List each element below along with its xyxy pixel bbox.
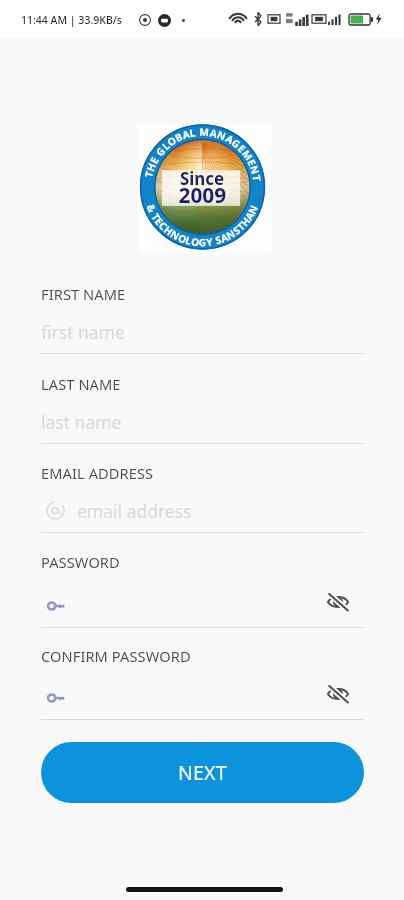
staticText: last name bbox=[41, 410, 122, 434]
button[interactable] bbox=[41, 590, 364, 622]
button[interactable]: Toggle password visibility bbox=[321, 677, 355, 711]
button[interactable] bbox=[41, 682, 364, 714]
staticText: CONFIRM PASSWORD bbox=[41, 646, 191, 666]
button[interactable]: last name bbox=[41, 406, 364, 438]
staticText: EMAIL ADDRESS bbox=[41, 463, 154, 483]
staticText: email address bbox=[77, 499, 192, 523]
staticText: 11:44 AM | 33.9KB/s bbox=[21, 13, 122, 27]
staticText: first name bbox=[41, 320, 125, 344]
staticText: PASSWORD bbox=[41, 552, 120, 572]
staticText: LAST NAME bbox=[41, 374, 121, 394]
button[interactable]: Toggle password visibility bbox=[321, 585, 355, 619]
staticText: FIRST NAME bbox=[41, 284, 126, 304]
button[interactable]: email address bbox=[41, 495, 364, 527]
staticText: NEXT bbox=[178, 759, 227, 786]
button[interactable]: first name bbox=[41, 316, 364, 348]
button[interactable]: NEXT bbox=[41, 742, 364, 803]
